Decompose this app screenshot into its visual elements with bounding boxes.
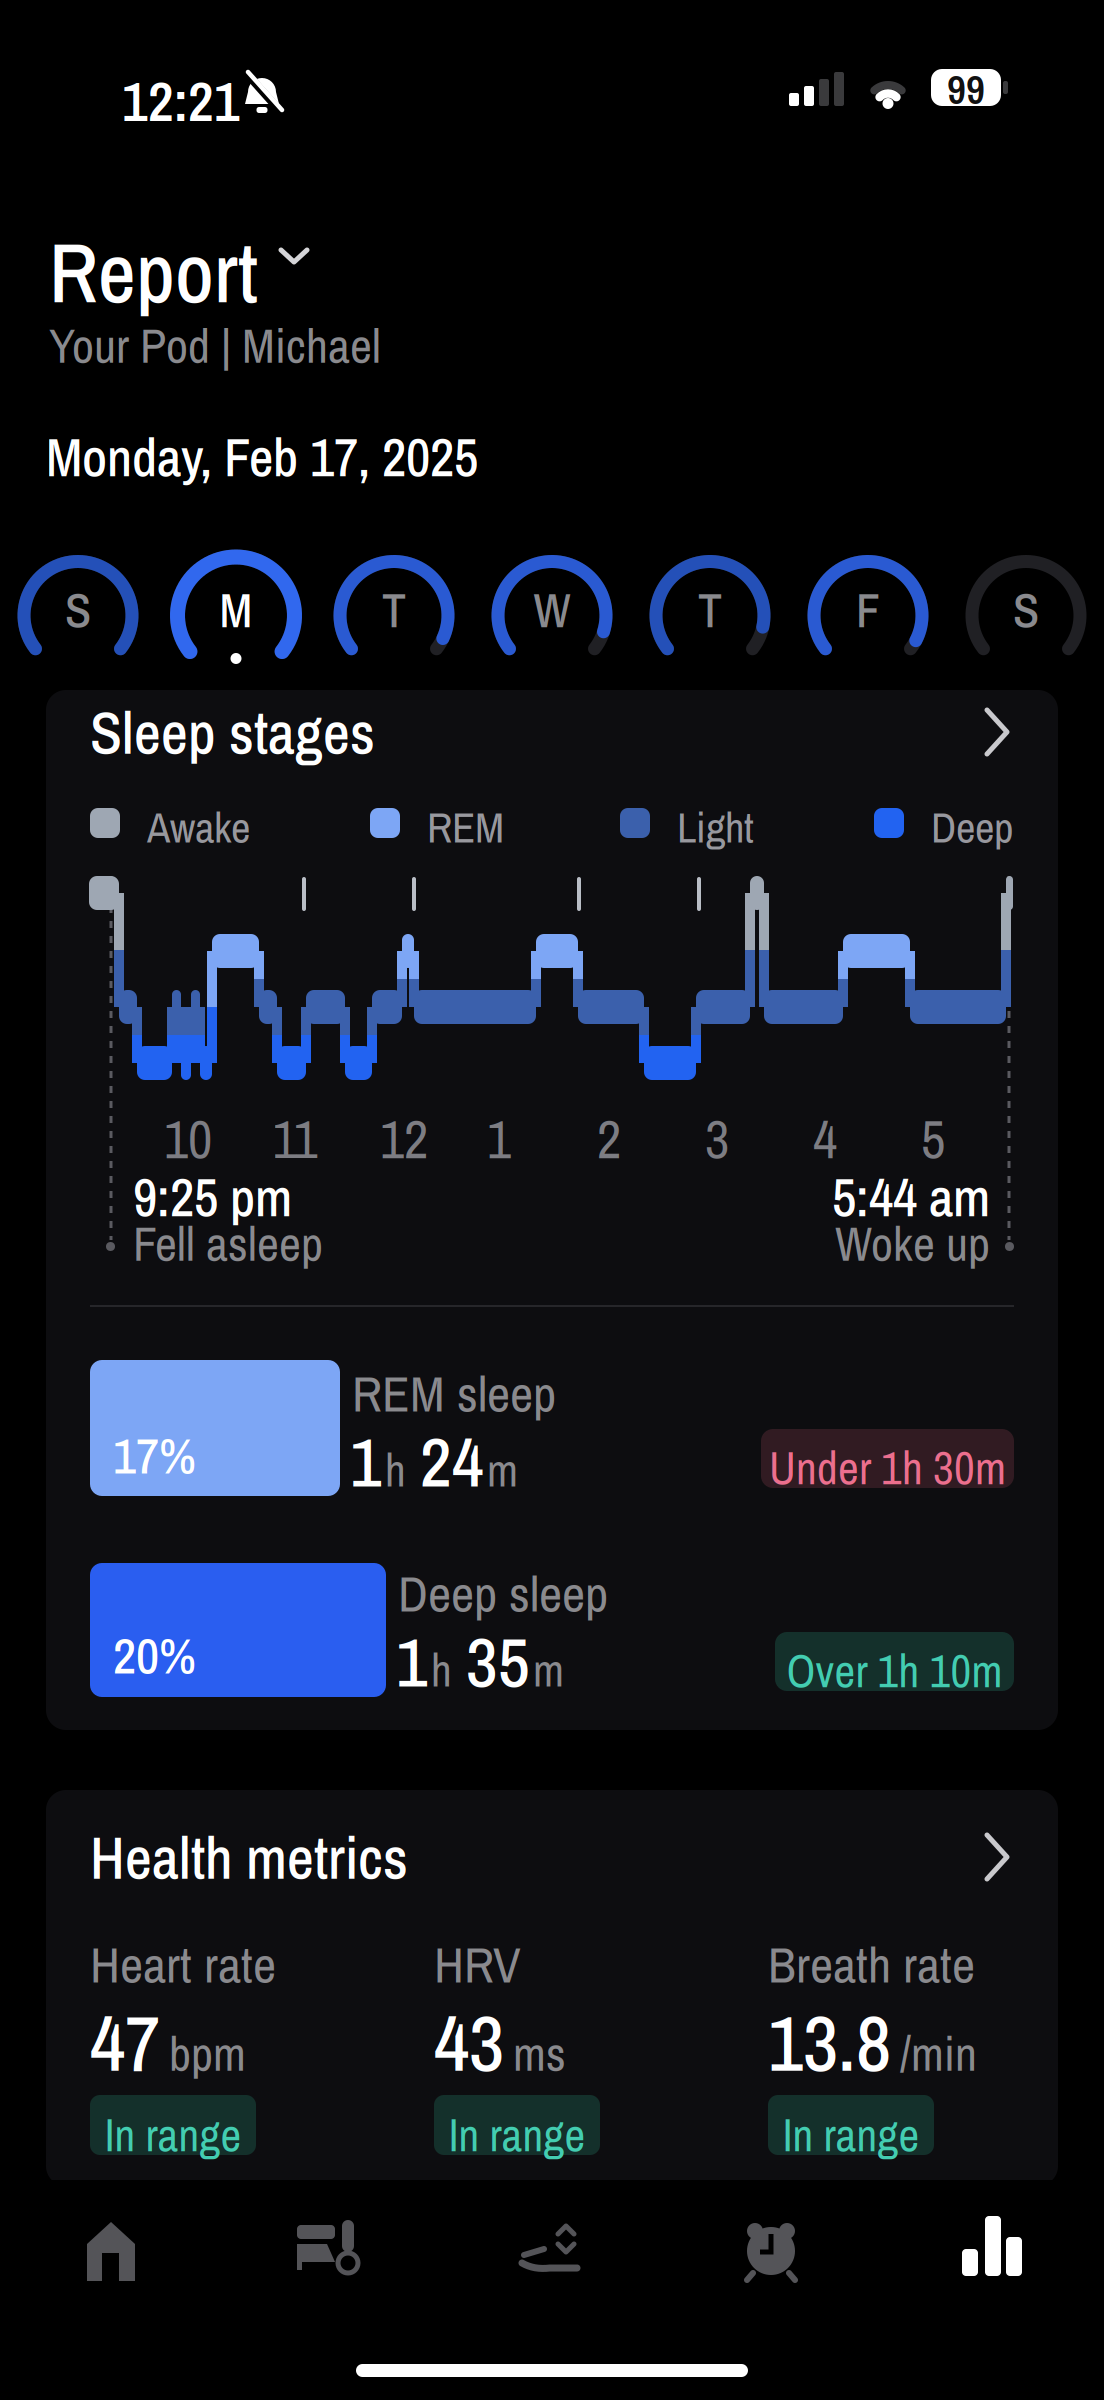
staticText: h bbox=[385, 1440, 406, 1500]
staticText: Over 1h 10m bbox=[786, 1641, 1002, 1700]
staticText: 12:21 bbox=[122, 64, 240, 137]
staticText: ms bbox=[513, 2022, 566, 2085]
staticText: m bbox=[487, 1440, 518, 1500]
staticText: 99 bbox=[947, 62, 985, 116]
staticText: Breath rate bbox=[768, 1931, 975, 1997]
staticText: M bbox=[219, 578, 252, 641]
staticText: Light bbox=[677, 799, 754, 855]
button[interactable]: S bbox=[947, 538, 1104, 682]
staticText: REM bbox=[427, 799, 504, 855]
staticText: Heart rate bbox=[90, 1931, 276, 1997]
staticText: Deep bbox=[931, 799, 1013, 855]
staticText: In range bbox=[782, 2105, 919, 2164]
staticText: Monday, Feb 17, 2025 bbox=[46, 422, 478, 492]
staticText: 13.8 bbox=[768, 1992, 891, 2094]
staticText: F bbox=[856, 578, 880, 641]
staticText: 24 bbox=[420, 1416, 484, 1507]
staticText: Under 1h 30m bbox=[769, 1438, 1006, 1497]
button[interactable]: M bbox=[157, 538, 315, 682]
staticText: 12 bbox=[380, 1104, 428, 1174]
button[interactable]: S bbox=[0, 538, 157, 682]
staticText: In range bbox=[104, 2105, 241, 2164]
staticText: 11 bbox=[272, 1104, 317, 1174]
staticText: /min bbox=[900, 2022, 977, 2085]
button[interactable]: Health metrics bbox=[46, 1815, 1058, 1903]
staticText: 1 bbox=[350, 1416, 382, 1507]
button[interactable]: W bbox=[473, 538, 631, 682]
staticText: 5:44 am bbox=[832, 1162, 990, 1232]
button[interactable]: T bbox=[315, 538, 473, 682]
button[interactable] bbox=[271, 2198, 391, 2308]
staticText: T bbox=[698, 578, 722, 641]
staticText: S bbox=[1013, 578, 1039, 641]
staticText: 35 bbox=[466, 1616, 530, 1707]
button[interactable] bbox=[711, 2198, 831, 2308]
staticText: h bbox=[431, 1640, 452, 1700]
staticText: 5 bbox=[921, 1104, 945, 1174]
staticText: Awake bbox=[147, 799, 250, 855]
button[interactable] bbox=[53, 2198, 173, 2308]
staticText: 1 bbox=[396, 1616, 428, 1707]
button[interactable]: Report bbox=[49, 218, 319, 294]
staticText: Fell asleep bbox=[133, 1212, 323, 1275]
staticText: 9:25 pm bbox=[133, 1162, 292, 1232]
button[interactable]: T bbox=[631, 538, 789, 682]
button[interactable]: Sleep stages bbox=[46, 690, 1058, 778]
staticText: 20% bbox=[113, 1622, 196, 1688]
staticText: T bbox=[382, 578, 406, 641]
staticText: 17% bbox=[113, 1422, 196, 1488]
staticText: 47 bbox=[90, 1992, 160, 2094]
button[interactable]: F bbox=[789, 538, 947, 682]
button[interactable] bbox=[935, 2198, 1055, 2308]
staticText: 43 bbox=[434, 1992, 504, 2094]
staticText: HRV bbox=[434, 1931, 521, 1997]
staticText: S bbox=[65, 578, 91, 641]
staticText: 1 bbox=[487, 1104, 511, 1174]
staticText: 3 bbox=[705, 1104, 729, 1174]
staticText: REM sleep bbox=[352, 1360, 556, 1426]
staticText: m bbox=[533, 1640, 564, 1700]
staticText: 4 bbox=[813, 1104, 837, 1174]
staticText: Health metrics bbox=[90, 1819, 408, 1896]
staticText: Sleep stages bbox=[90, 694, 375, 771]
staticText: Your Pod | Michael bbox=[49, 314, 381, 377]
staticText: Deep sleep bbox=[398, 1560, 608, 1626]
button[interactable] bbox=[492, 2198, 612, 2308]
staticText: 10 bbox=[164, 1104, 212, 1174]
staticText: 2 bbox=[597, 1104, 621, 1174]
staticText: Report bbox=[49, 218, 258, 327]
staticText: In range bbox=[448, 2105, 585, 2164]
staticText: Woke up bbox=[835, 1212, 990, 1275]
staticText: bpm bbox=[169, 2022, 246, 2085]
staticText: W bbox=[533, 578, 570, 641]
